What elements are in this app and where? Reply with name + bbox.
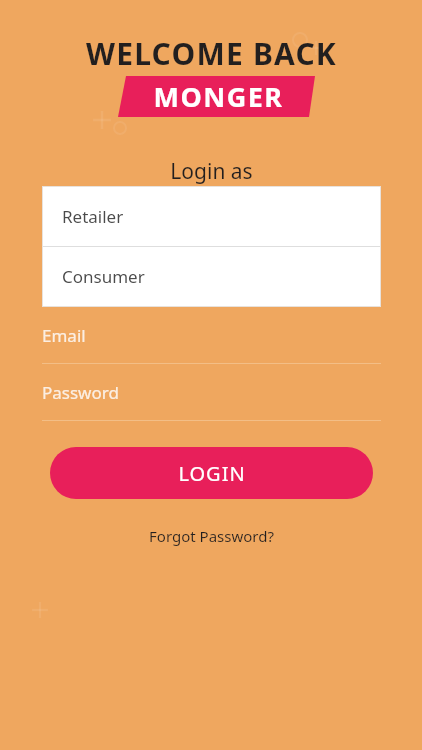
button[interactable]: Email	[42, 318, 381, 364]
button[interactable]: LOGIN	[50, 447, 373, 499]
staticText: WELCOME BACK	[86, 33, 337, 74]
staticText: Consumer	[62, 265, 145, 288]
staticText: MONGER	[153, 78, 284, 115]
staticText: Email	[42, 324, 86, 347]
staticText: Password	[42, 381, 119, 404]
button[interactable]: Consumer	[42, 247, 381, 306]
staticText: Login as	[170, 157, 253, 186]
button[interactable]: Retailer	[42, 186, 381, 246]
staticText: Forgot Password?	[149, 526, 274, 546]
button[interactable]: Forgot Password?	[139, 522, 284, 550]
staticText: LOGIN	[178, 460, 246, 487]
staticText: Retailer	[62, 205, 124, 228]
button[interactable]: Password	[42, 375, 381, 421]
